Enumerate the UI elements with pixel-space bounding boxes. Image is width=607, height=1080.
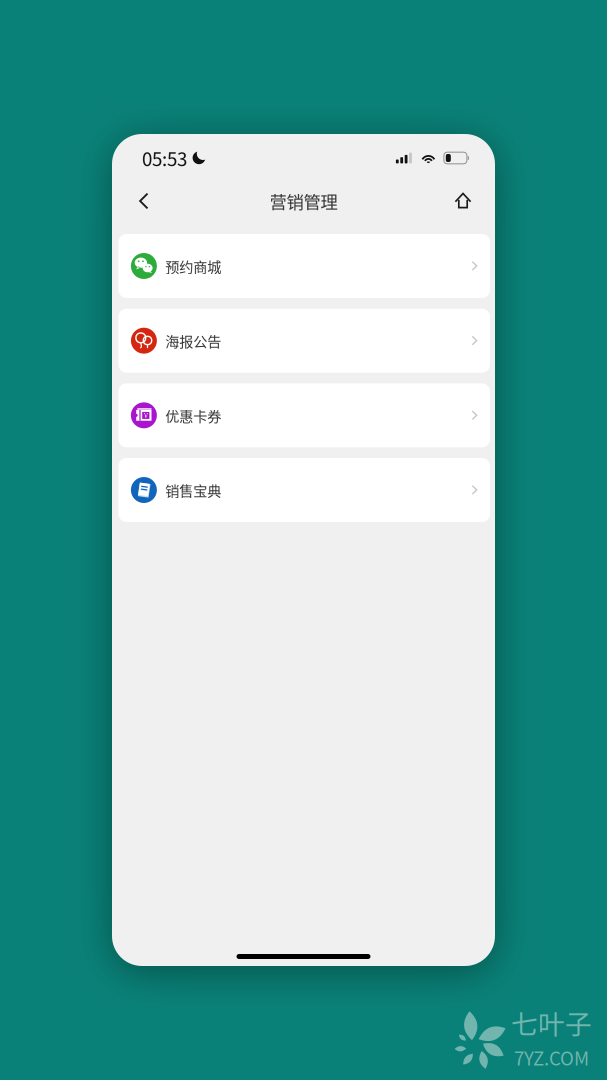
staticText: 05:53 [142, 144, 187, 171]
button[interactable]: Back [123, 181, 165, 221]
staticText: 销售宝典 [165, 480, 221, 500]
staticText: 7YZ.COM [514, 1044, 589, 1071]
button[interactable]: 海报公告 [118, 309, 490, 373]
staticText: 预约商城 [165, 256, 221, 276]
staticText: 营销管理 [269, 188, 337, 214]
button[interactable]: Home [442, 181, 484, 221]
staticText: 优惠卡券 [165, 405, 221, 426]
button[interactable]: 销售宝典 [118, 458, 490, 522]
staticText: 七叶子 [511, 1003, 592, 1042]
staticText: 海报公告 [165, 330, 221, 351]
button[interactable]: 优惠卡券 [118, 383, 490, 447]
button[interactable]: 预约商城 [118, 234, 490, 298]
